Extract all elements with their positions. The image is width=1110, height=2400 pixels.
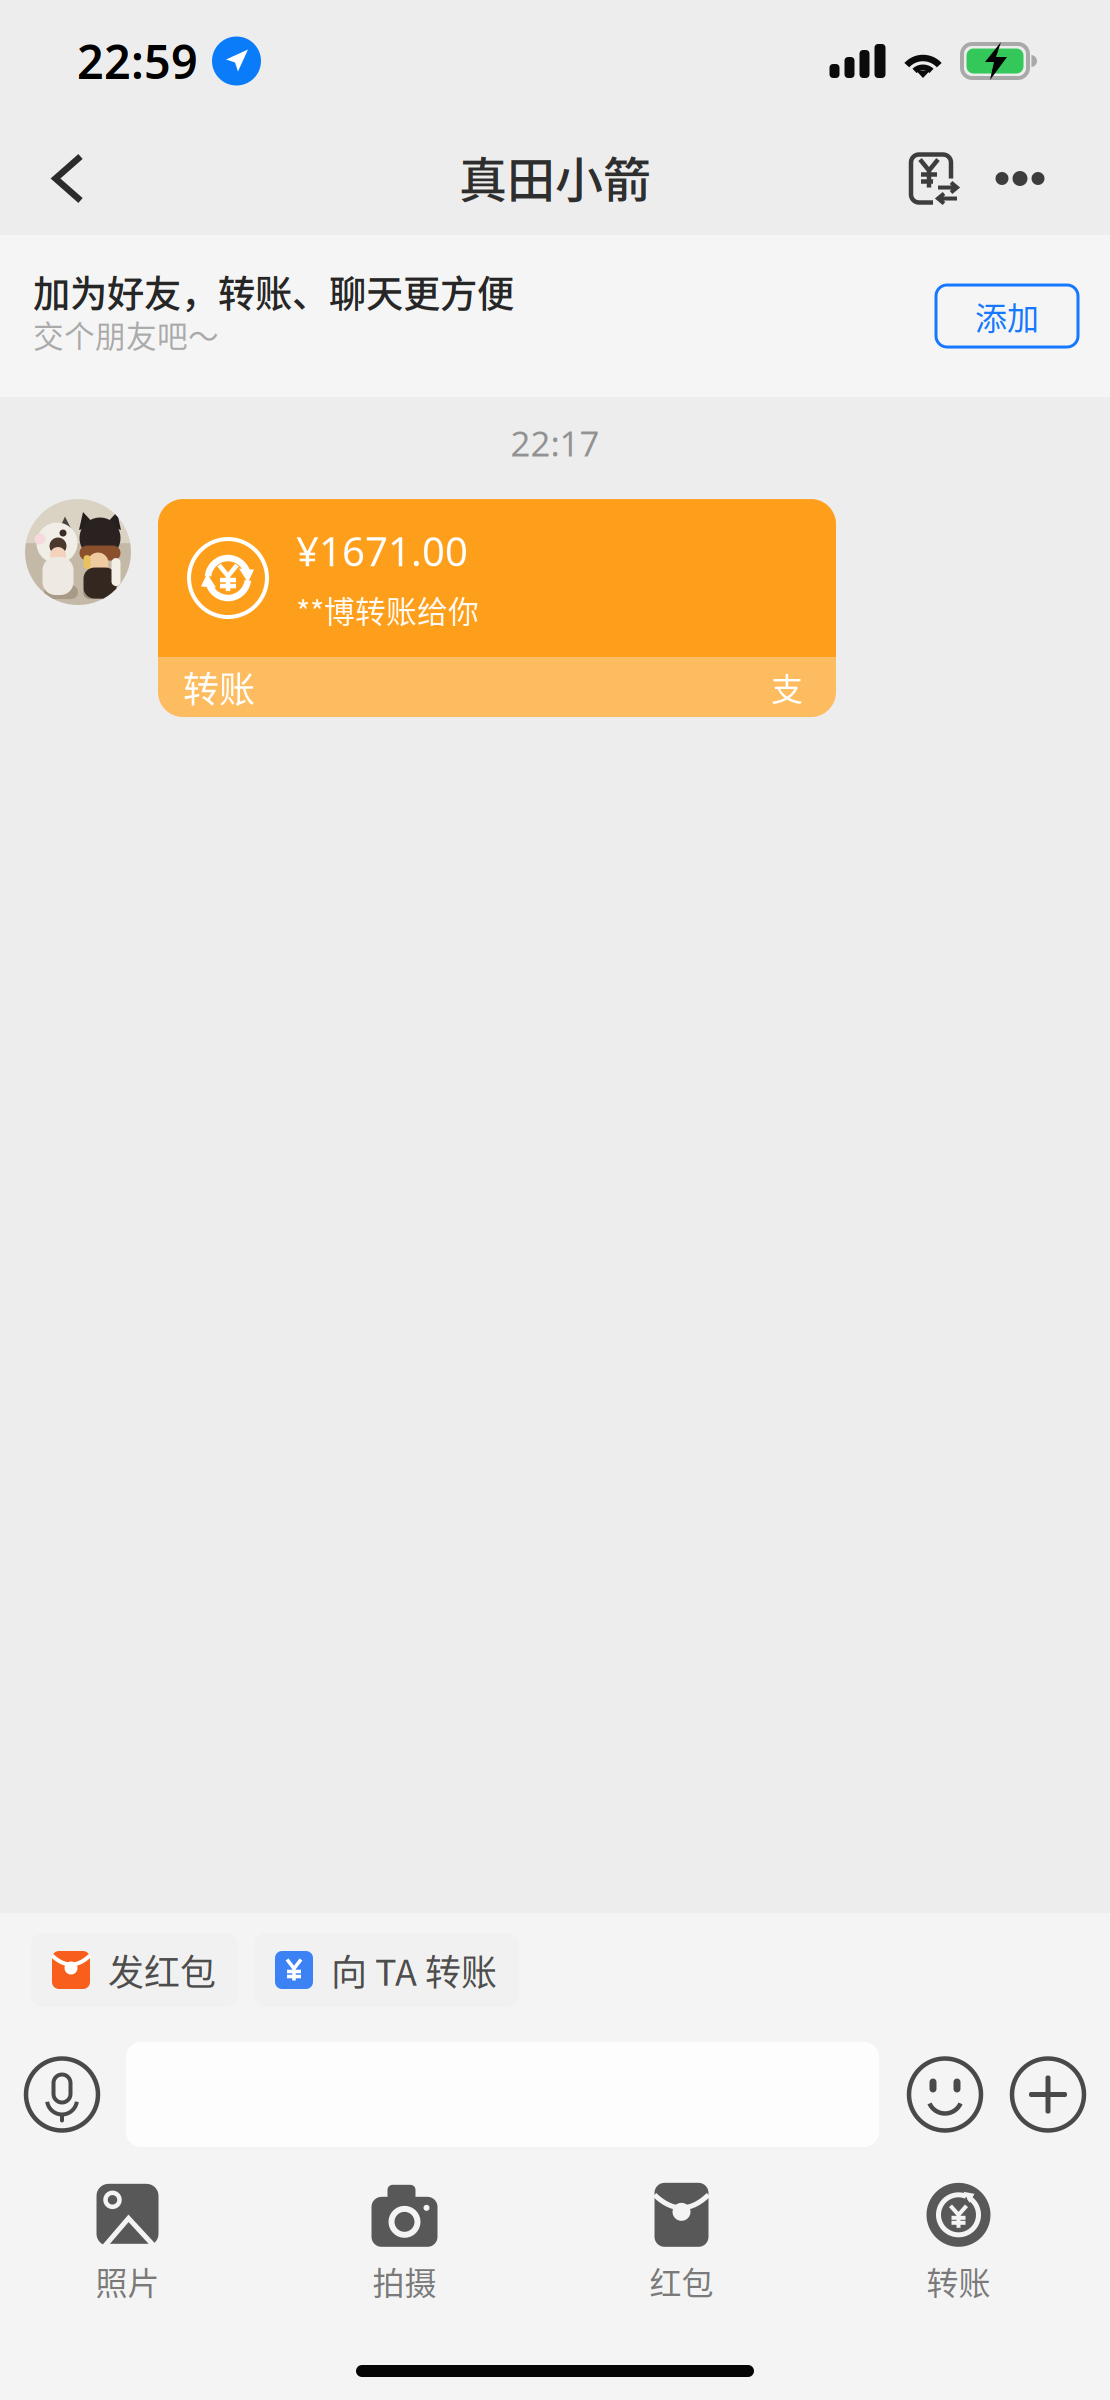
- button[interactable]: Back: [16, 122, 120, 235]
- staticText: 交个朋友吧～: [33, 312, 219, 357]
- staticText: 22:59: [77, 30, 198, 92]
- staticText: 照片: [95, 2258, 159, 2304]
- button[interactable]: Emoji picker: [906, 2042, 984, 2147]
- button[interactable]: 转账: [820, 2167, 1097, 2319]
- staticText: 22:17: [510, 420, 599, 466]
- button[interactable]: ¥1671.00: [158, 499, 836, 717]
- staticText: **博转账给你: [296, 587, 479, 632]
- button[interactable]: Voice message: [12, 2042, 112, 2147]
- staticText: 加为好友，转账、聊天更方便: [33, 264, 514, 319]
- staticText: ¥1671.00: [296, 524, 468, 577]
- staticText: 发红包: [108, 1944, 216, 1996]
- staticText: 拍摄: [372, 2258, 436, 2304]
- staticText: 支: [771, 664, 803, 710]
- button[interactable]: 添加: [936, 285, 1078, 347]
- button[interactable]: 发红包: [31, 1933, 238, 2007]
- button[interactable]: More actions: [1009, 2042, 1087, 2147]
- staticText: 向 TA 转账: [331, 1944, 497, 1996]
- button[interactable]: 红包: [543, 2167, 820, 2319]
- staticText: 红包: [649, 2258, 713, 2304]
- button[interactable]: Transfer records: [891, 122, 971, 235]
- staticText: 添加: [975, 293, 1039, 339]
- staticText: 真田小箭: [459, 142, 651, 211]
- button[interactable]: 拍摄: [266, 2167, 543, 2319]
- button[interactable]: 照片: [0, 2167, 266, 2319]
- staticText: 转账: [183, 661, 255, 713]
- button[interactable]: More options: [971, 122, 1069, 235]
- button[interactable]: 向 TA 转账: [254, 1933, 519, 2007]
- staticText: 转账: [926, 2258, 990, 2304]
